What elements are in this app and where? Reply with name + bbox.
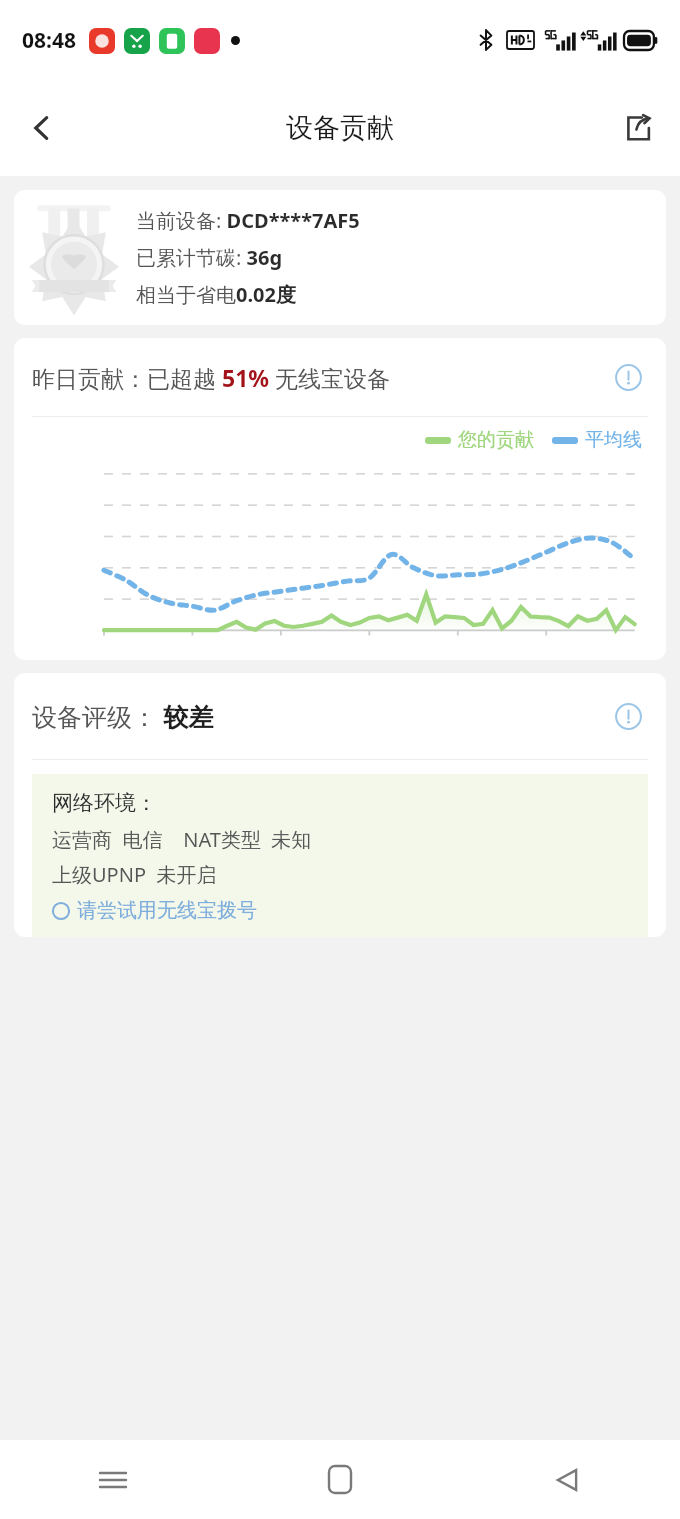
button[interactable]: 说明 xyxy=(608,357,648,397)
staticText: 上级UPNP 未开启 xyxy=(52,861,217,888)
button[interactable]: 当前设备: DCD****7AF5 xyxy=(14,190,666,325)
staticText: 昨日贡献：已超越 51% 无线宝设备 xyxy=(32,362,608,393)
staticText: 相当于省电0.02度 xyxy=(136,281,296,308)
staticText: 网络环境： xyxy=(52,790,157,816)
staticText: 已累计节碳: 36g xyxy=(136,244,283,271)
button[interactable]: Back xyxy=(453,1440,680,1519)
button[interactable]: Share xyxy=(610,100,666,156)
staticText: 设备评级： 较差 xyxy=(32,699,608,733)
staticText: 运营商 电信 NAT类型 未知 xyxy=(52,826,312,853)
button[interactable]: Recents xyxy=(0,1440,226,1519)
button[interactable]: Home xyxy=(226,1440,453,1519)
staticText: 请尝试用无线宝拨号 xyxy=(77,898,257,923)
button[interactable]: Back xyxy=(14,100,70,156)
staticText: 平均线 xyxy=(585,428,642,452)
button[interactable]: 评级说明 xyxy=(608,696,648,736)
staticText: 您的贡献 xyxy=(458,428,534,452)
staticText: 设备贡献 xyxy=(286,111,394,145)
staticText: 当前设备: DCD****7AF5 xyxy=(136,207,360,234)
staticText: 08:48 xyxy=(22,26,76,55)
